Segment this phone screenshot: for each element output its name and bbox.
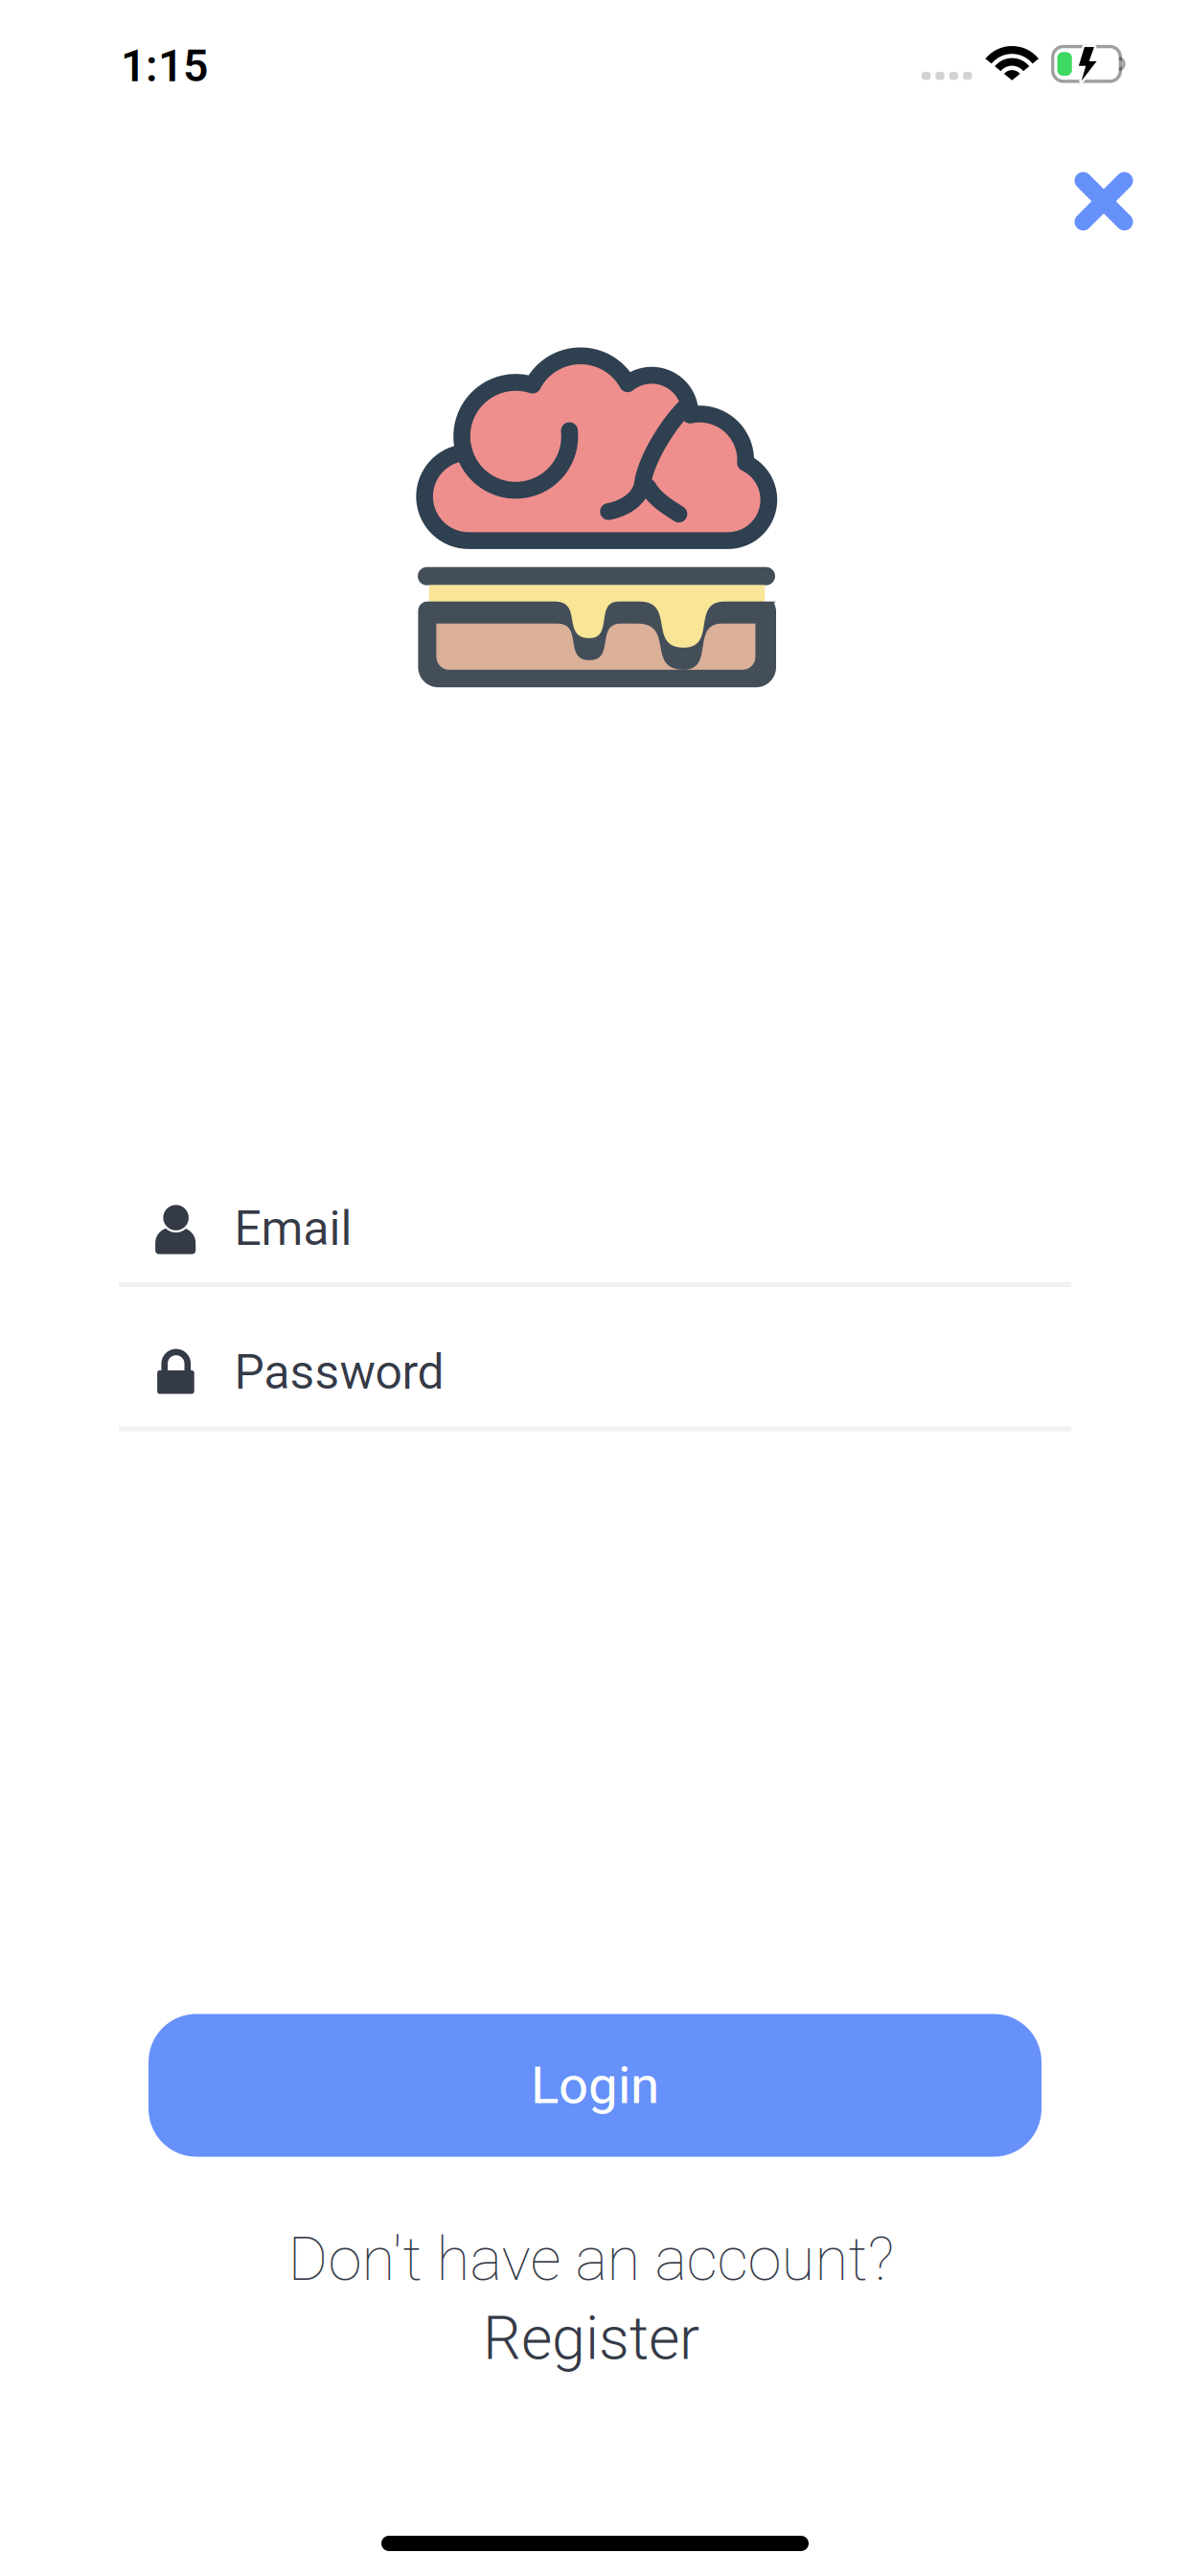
staticText: Login <box>531 2055 659 2116</box>
staticText: Don't have an account? <box>288 2223 894 2295</box>
button[interactable]: Don't have an account? <box>160 2212 1022 2385</box>
staticText: 1:15 <box>121 40 208 92</box>
button[interactable]: Login <box>149 2014 1041 2157</box>
staticText: Register <box>483 2303 699 2374</box>
staticText: Password <box>234 1344 444 1400</box>
staticText: Email <box>234 1201 352 1257</box>
button[interactable]: Close <box>1041 139 1166 264</box>
